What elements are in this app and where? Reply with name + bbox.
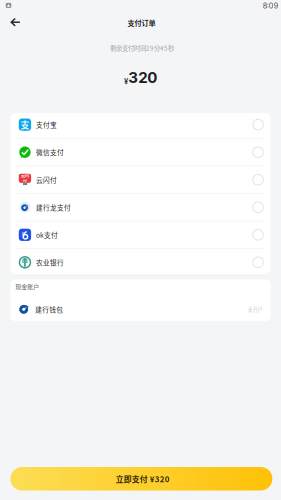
staticText: 支付宝 [36,120,57,129]
button[interactable]: Back [5,13,26,32]
staticText: ok支付 [36,230,58,240]
staticText: ¥ [124,77,128,86]
staticText: 支付订单 [127,17,155,28]
staticText: 微信支付 [36,147,64,157]
button[interactable]: ok支付 [10,221,270,248]
staticText: 云闪 [21,173,29,179]
button[interactable]: 云闪 [10,166,270,193]
staticText: 现金账户 [15,282,39,291]
staticText: 付 [23,178,27,184]
staticText: 支 [20,118,29,131]
button[interactable]: 建行钱包 [10,296,270,322]
staticText: 建行龙支付 [36,202,71,212]
staticText: 建行钱包 [35,304,63,314]
staticText: 剩余支付时间29分45秒 [110,43,174,53]
staticText: 320 [128,68,157,87]
staticText: 农业银行 [36,257,64,267]
staticText: 8:09 [263,1,278,10]
staticText: 立即支付 ¥320 [116,473,170,484]
button[interactable]: 微信支付 [10,139,270,166]
button[interactable]: 农业银行 [10,249,270,276]
staticText: 云闪付 [36,175,57,185]
button[interactable]: 支 [10,111,270,138]
button[interactable]: 立即支付 ¥320 [10,467,272,490]
button[interactable]: 建行龙支付 [10,194,270,221]
staticText: 未开户 [247,305,262,313]
